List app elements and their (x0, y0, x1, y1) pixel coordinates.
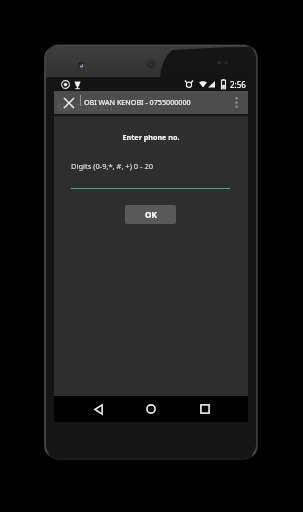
staticText: SIM TOOLKIT (57, 101, 114, 113)
button[interactable]: Home (139, 396, 163, 422)
staticText: OK (145, 209, 157, 220)
button[interactable]: Recents (193, 396, 217, 422)
button[interactable]: Back (86, 396, 110, 422)
staticText: OBI WAN KENOBI - 0755000000 (84, 97, 191, 107)
button[interactable]: More options (226, 91, 247, 114)
staticText: 2:56 (230, 79, 246, 90)
staticText: Enter phone no. (54, 132, 248, 142)
staticText: Digits (0-9,*, #, +) 0 - 20 (71, 161, 154, 171)
button[interactable]: Close (58, 91, 80, 114)
button[interactable]: OK (125, 205, 176, 224)
